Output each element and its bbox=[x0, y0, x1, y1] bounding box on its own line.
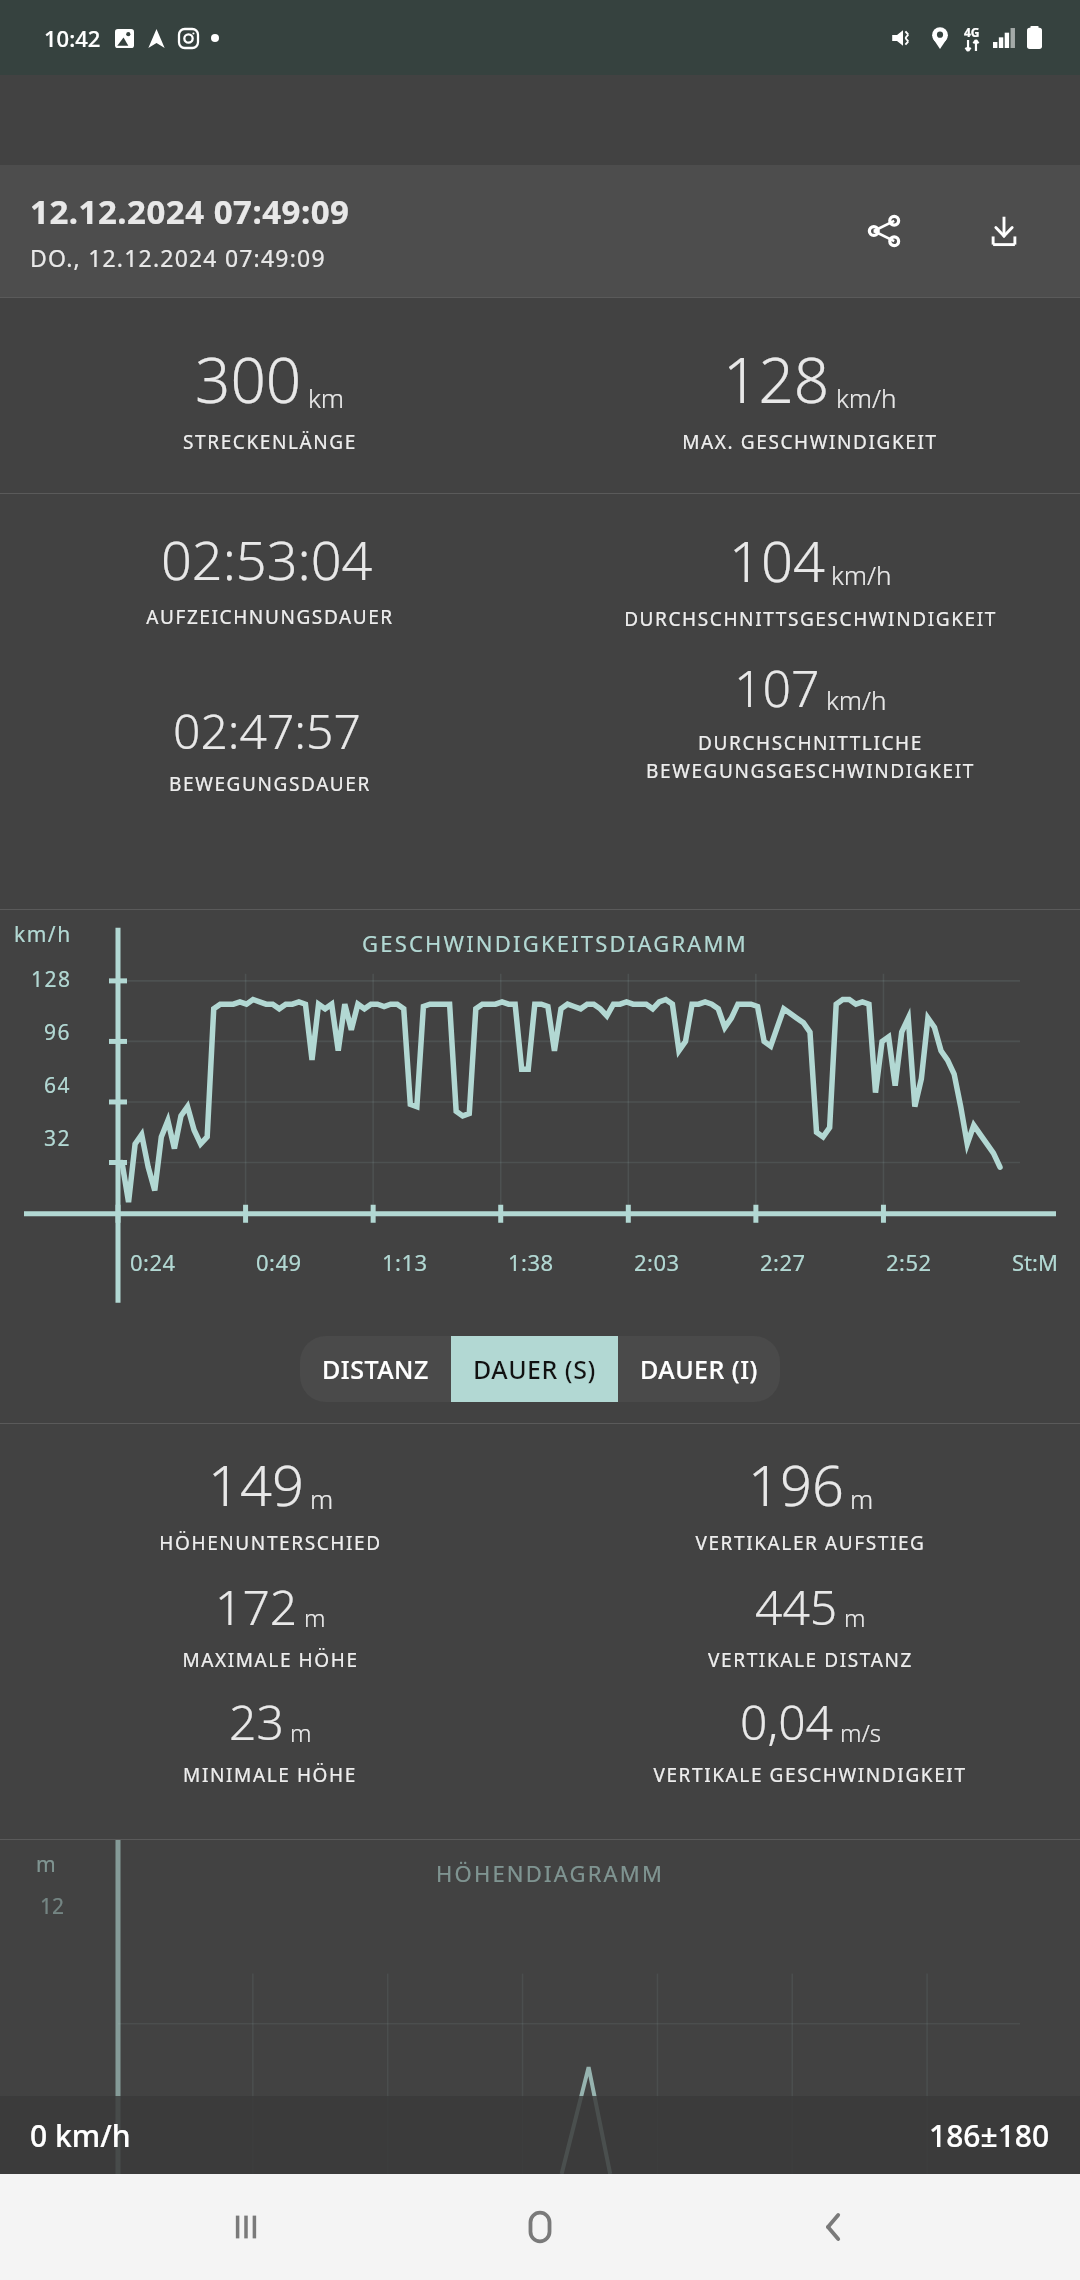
staticText: 64 bbox=[44, 1071, 72, 1100]
staticText: STRECKENLÄNGE bbox=[183, 429, 357, 455]
staticText: 12.12.2024 07:49:09 bbox=[30, 189, 350, 234]
staticText: 02:53:04 bbox=[161, 522, 373, 596]
button[interactable]: DAUER (I) bbox=[618, 1336, 780, 1402]
staticText: km/h bbox=[836, 380, 897, 415]
staticText: km/h bbox=[831, 557, 892, 592]
staticText: 107 bbox=[734, 654, 820, 722]
staticText: 02:47:57 bbox=[173, 698, 361, 763]
staticText: 2:27 bbox=[760, 1247, 886, 1277]
button[interactable]: DISTANZ bbox=[300, 1336, 451, 1402]
staticText: BEWEGUNGSDAUER bbox=[169, 771, 371, 797]
staticText: m bbox=[310, 1481, 334, 1516]
staticText: HÖHENDIAGRAMM bbox=[436, 1858, 665, 1888]
staticText: m bbox=[844, 1601, 866, 1634]
staticText: 23 bbox=[229, 1689, 284, 1754]
staticText: HÖHENUNTERSCHIED bbox=[159, 1530, 382, 1556]
staticText: 445 bbox=[755, 1574, 838, 1639]
button[interactable]: Share bbox=[848, 195, 920, 267]
staticText: 10:42 bbox=[44, 23, 101, 53]
staticText: DAUER (S) bbox=[473, 1352, 596, 1386]
staticText: 0,04 bbox=[740, 1689, 834, 1754]
staticText: km/h bbox=[14, 920, 72, 949]
staticText: 0:49 bbox=[256, 1247, 382, 1277]
staticText: 104 bbox=[729, 522, 825, 598]
staticText: DAUER (I) bbox=[640, 1352, 758, 1386]
staticText: 4G bbox=[964, 24, 980, 40]
staticText: km/h bbox=[826, 682, 887, 717]
staticText: 196 bbox=[748, 1446, 844, 1522]
staticText: MAXIMALE HÖHE bbox=[182, 1647, 359, 1673]
staticText: 1:38 bbox=[508, 1247, 634, 1277]
staticText: AUFZEICHNUNGSDAUER bbox=[146, 604, 394, 630]
button[interactable]: Download bbox=[968, 195, 1040, 267]
staticText: St:M bbox=[1012, 1247, 1070, 1277]
staticText: m bbox=[850, 1481, 874, 1516]
staticText: 128 bbox=[31, 965, 72, 994]
staticText: 1:13 bbox=[382, 1247, 508, 1277]
staticText: 0 km/h bbox=[30, 2115, 131, 2156]
staticText: 149 bbox=[208, 1446, 304, 1522]
staticText: DO., 12.12.2024 07:49:09 bbox=[30, 242, 326, 273]
staticText: 0:24 bbox=[130, 1247, 256, 1277]
staticText: 2:52 bbox=[886, 1247, 1012, 1277]
button[interactable]: Home bbox=[492, 2179, 588, 2275]
button[interactable]: DAUER (S) bbox=[451, 1336, 618, 1402]
staticText: 12 bbox=[40, 1892, 65, 1921]
staticText: VERTIKALER AUFSTIEG bbox=[695, 1530, 926, 1556]
staticText: m/s bbox=[840, 1716, 881, 1749]
staticText: 2:03 bbox=[634, 1247, 760, 1277]
staticText: DISTANZ bbox=[322, 1352, 429, 1386]
staticText: 128 bbox=[723, 337, 830, 421]
staticText: km bbox=[308, 380, 345, 415]
staticText: DURCHSCHNITTSGESCHWINDIGKEIT bbox=[624, 606, 997, 632]
staticText: 300 bbox=[195, 337, 302, 421]
staticText: m bbox=[290, 1716, 312, 1749]
button[interactable]: Recent apps bbox=[198, 2179, 294, 2275]
staticText: MAX. GESCHWINDIGKEIT bbox=[682, 429, 938, 455]
staticText: m bbox=[36, 1850, 56, 1879]
staticText: MINIMALE HÖHE bbox=[183, 1762, 357, 1788]
staticText: VERTIKALE DISTANZ bbox=[708, 1647, 913, 1673]
staticText: VERTIKALE GESCHWINDIGKEIT bbox=[653, 1762, 967, 1788]
button[interactable]: Back bbox=[786, 2179, 882, 2275]
staticText: DURCHSCHNITTLICHE BEWEGUNGSGESCHWINDIGKE… bbox=[646, 730, 975, 784]
staticText: m bbox=[304, 1601, 326, 1634]
staticText: 32 bbox=[44, 1124, 72, 1153]
staticText: 186±180 bbox=[929, 2115, 1050, 2156]
staticText: 96 bbox=[44, 1018, 72, 1047]
staticText: GESCHWINDIGKEITSDIAGRAMM bbox=[362, 928, 748, 958]
staticText: 172 bbox=[215, 1574, 298, 1639]
